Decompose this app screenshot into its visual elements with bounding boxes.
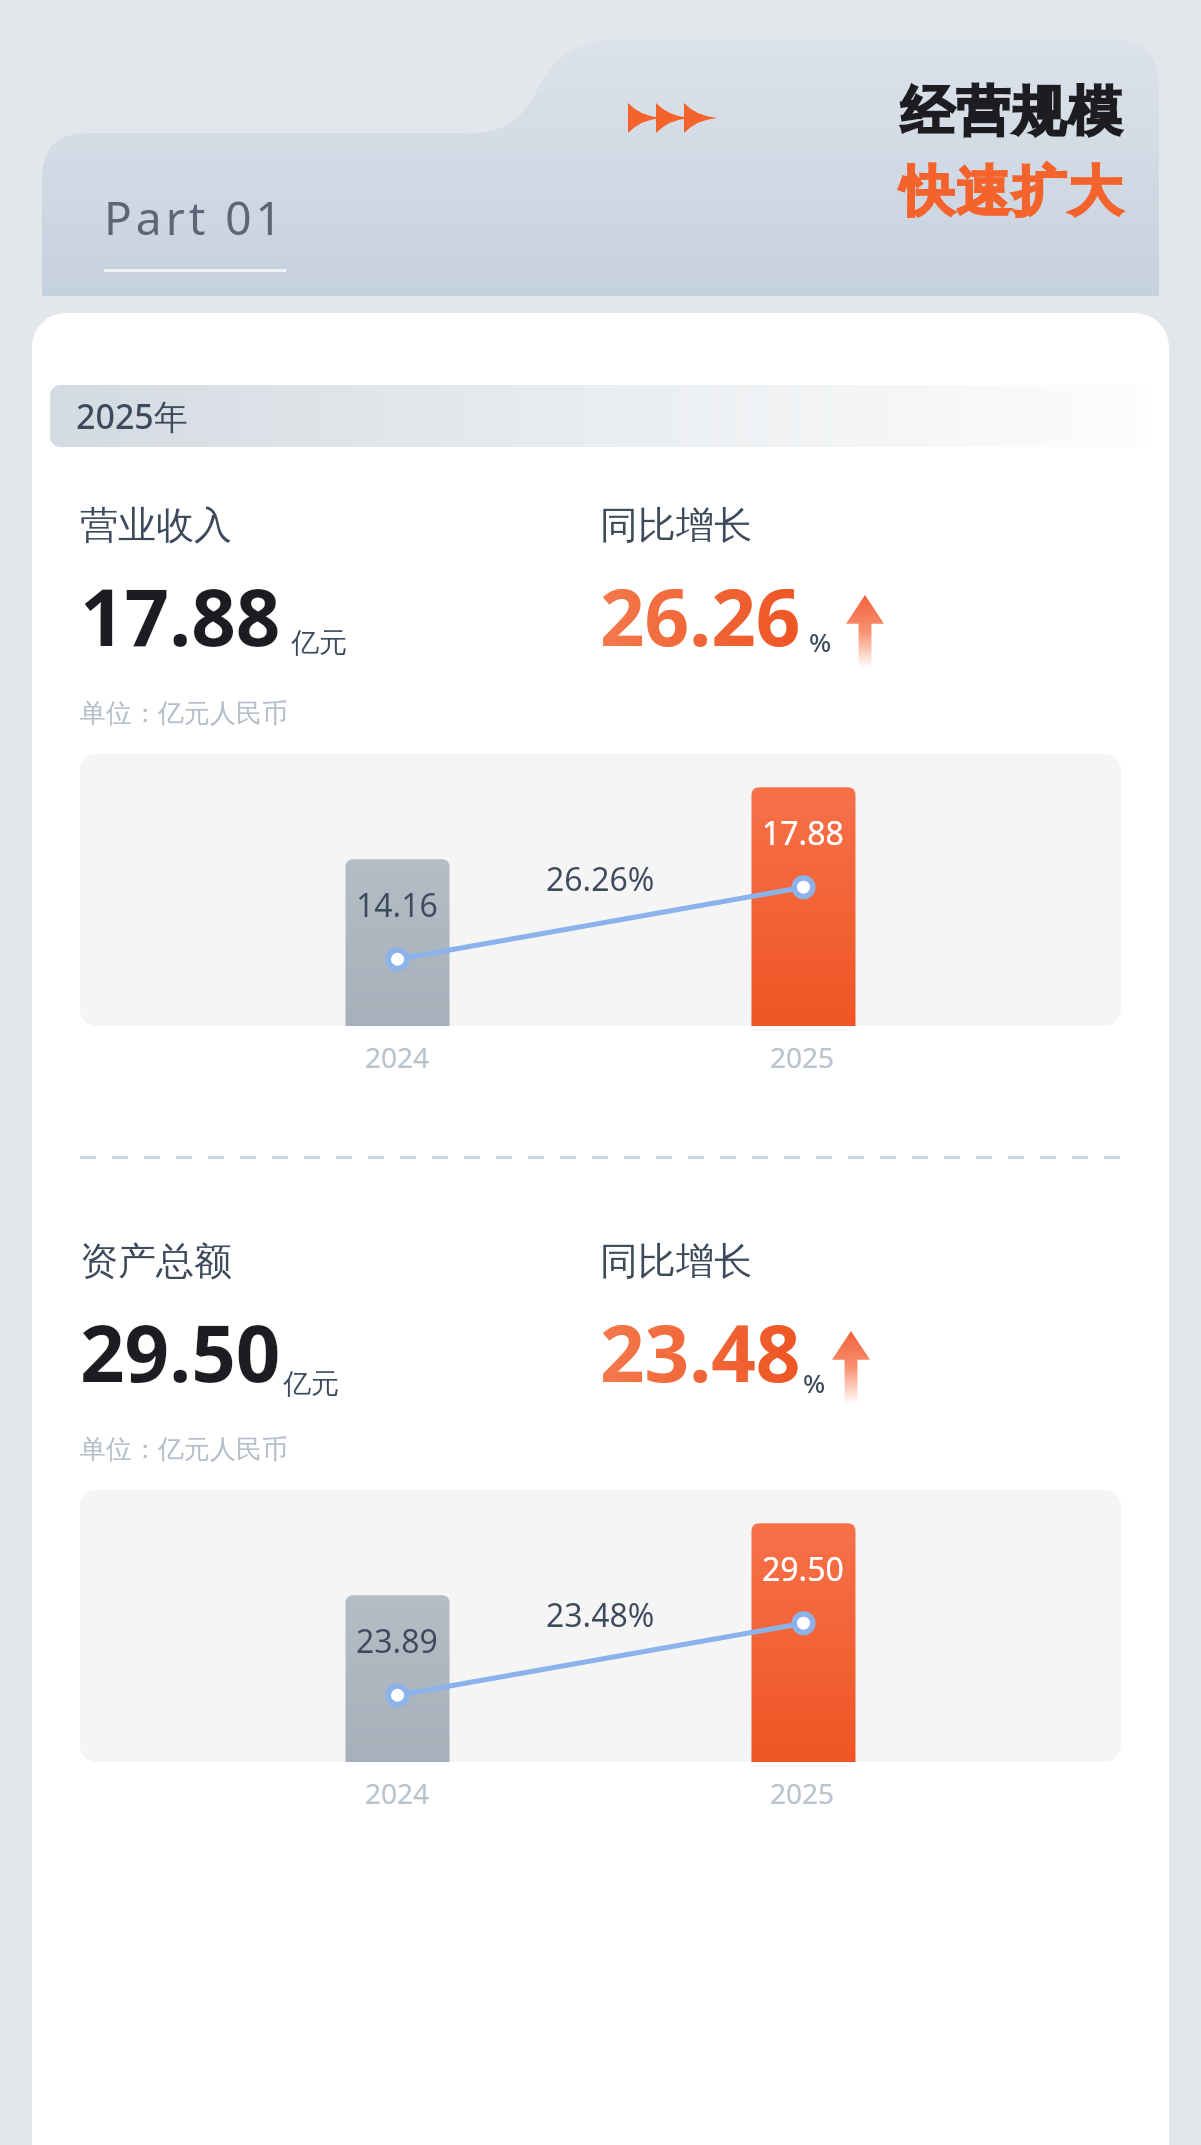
staticText: 17.88 <box>762 811 844 855</box>
staticText: 单位：亿元人民币 <box>80 1433 288 1466</box>
staticText: 2025 <box>770 1038 835 1076</box>
staticText: 2025年 <box>76 393 188 439</box>
button[interactable]: 2025年 <box>50 385 1151 447</box>
staticText: 29.50 <box>762 1547 844 1591</box>
other: Increase <box>846 595 884 667</box>
staticText: Part 01 <box>104 186 286 249</box>
staticText: % <box>803 1365 826 1400</box>
staticText: 2024 <box>365 1774 430 1812</box>
staticText: 经营规模 <box>899 78 1123 146</box>
staticText: 2025 <box>770 1774 835 1812</box>
staticText: 29.50 <box>80 1299 281 1405</box>
staticText: 单位：亿元人民币 <box>80 697 288 730</box>
other: Increase <box>832 1331 870 1403</box>
staticText: 2024 <box>365 1038 430 1076</box>
staticText: 快速扩大 <box>899 158 1123 226</box>
staticText: 资产总额 <box>80 1237 232 1285</box>
staticText: 23.48 <box>600 1299 801 1405</box>
staticText: 23.89 <box>356 1619 438 1663</box>
staticText: 14.16 <box>356 883 438 927</box>
staticText: % <box>809 624 832 659</box>
staticText: 亿元 <box>291 625 347 660</box>
staticText: 亿元 <box>283 1366 339 1401</box>
staticText: 同比增长 <box>600 1237 752 1285</box>
staticText: 同比增长 <box>600 501 752 549</box>
staticText: 26.26% <box>546 857 655 901</box>
staticText: 营业收入 <box>80 501 232 549</box>
staticText: 23.48% <box>546 1593 655 1637</box>
staticText: 26.26 <box>600 563 801 669</box>
staticText: 17.88 <box>80 563 281 669</box>
other: Arrows <box>628 103 712 133</box>
